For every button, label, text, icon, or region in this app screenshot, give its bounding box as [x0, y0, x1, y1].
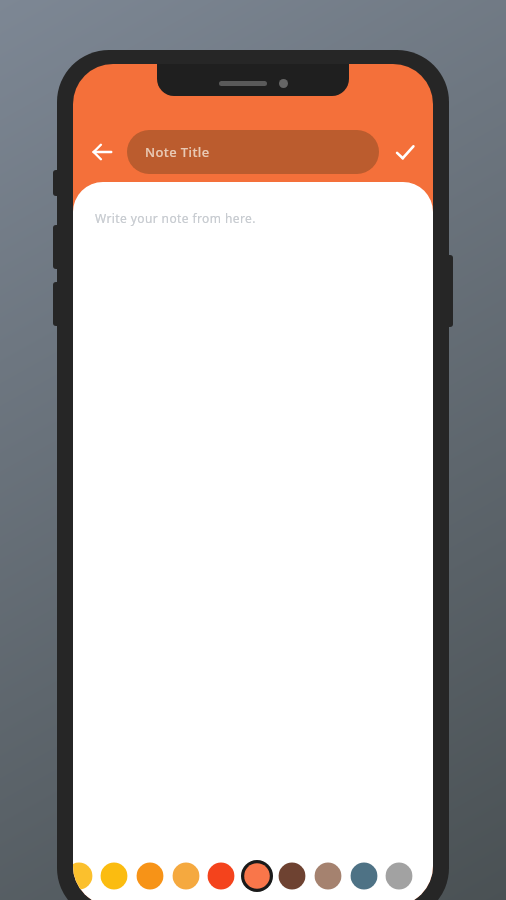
- button[interactable]: Choose colour: [383, 860, 415, 892]
- button[interactable]: Choose colour: [205, 860, 237, 892]
- button[interactable]: Back: [81, 131, 123, 173]
- button[interactable]: Choose colour: [98, 860, 130, 892]
- staticText: Write your note from here.: [95, 210, 256, 226]
- button[interactable]: Choose colour: [312, 860, 344, 892]
- button[interactable]: Choose colour: [134, 860, 166, 892]
- staticText: Note Title: [145, 143, 210, 161]
- button[interactable]: Choose colour: [276, 860, 308, 892]
- button[interactable]: Choose colour: [170, 860, 202, 892]
- button[interactable]: Save note: [385, 132, 425, 172]
- button[interactable]: Choose colour: [241, 860, 273, 892]
- button[interactable]: Write your note from here.: [73, 182, 433, 850]
- button[interactable]: Choose colour: [73, 860, 95, 892]
- button[interactable]: Choose colour: [348, 860, 380, 892]
- button[interactable]: Note Title: [127, 130, 379, 174]
